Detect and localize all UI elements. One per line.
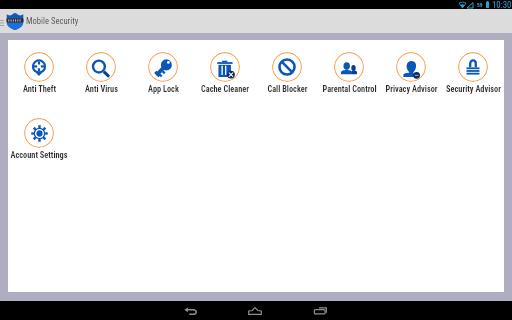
button[interactable]: Recents bbox=[306, 301, 334, 320]
staticText: Anti Theft bbox=[23, 84, 56, 94]
button[interactable]: Parental Control bbox=[318, 52, 380, 94]
staticText: Anti Virus bbox=[85, 84, 118, 94]
button[interactable]: Cache Cleaner bbox=[194, 52, 256, 94]
button[interactable]: Back bbox=[176, 301, 204, 320]
staticText: Call Blocker bbox=[267, 84, 308, 94]
staticText: Privacy Advisor bbox=[385, 84, 438, 94]
staticText: Mobile Security bbox=[26, 16, 79, 26]
staticText: Parental Control bbox=[322, 84, 377, 94]
staticText: App Lock bbox=[148, 84, 179, 94]
button[interactable]: Menu bbox=[0, 9, 6, 33]
staticText: 59 bbox=[477, 2, 483, 8]
button[interactable]: Anti Virus bbox=[70, 52, 132, 94]
button[interactable]: App Lock bbox=[132, 52, 194, 94]
staticText: Account Settings bbox=[10, 150, 68, 160]
button[interactable]: Home bbox=[241, 301, 269, 320]
button[interactable]: Security Advisor bbox=[442, 52, 504, 94]
staticText: Security Advisor bbox=[446, 84, 501, 94]
staticText: Cache Cleaner bbox=[201, 84, 249, 94]
staticText: 10:30 bbox=[492, 0, 512, 9]
button[interactable]: Anti Theft bbox=[8, 52, 70, 94]
button[interactable]: Privacy Advisor bbox=[380, 52, 442, 94]
button[interactable]: Call Blocker bbox=[256, 52, 318, 94]
button[interactable]: Account Settings bbox=[8, 118, 70, 160]
